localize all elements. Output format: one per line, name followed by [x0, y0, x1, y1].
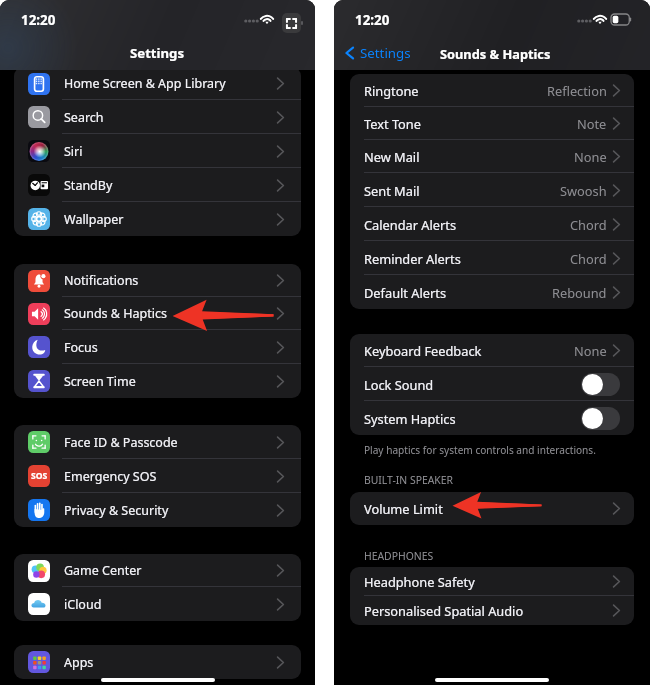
staticText: 12:20 [21, 11, 56, 29]
button[interactable]: System Haptics [350, 401, 634, 435]
button[interactable]: Headphone Safety [350, 567, 634, 596]
staticText: Sounds & Haptics [64, 305, 277, 322]
staticText: HEADPHONES [364, 549, 434, 563]
staticText: Sounds & Haptics [440, 45, 551, 62]
button[interactable]: Reminder Alerts [350, 241, 634, 275]
button[interactable]: New Mail [350, 140, 634, 173]
staticText: None [574, 148, 607, 165]
staticText: Reminder Alerts [364, 250, 570, 267]
staticText: None [574, 342, 607, 359]
staticText: Chord [570, 250, 607, 267]
staticText: Face ID & Passcode [64, 434, 277, 451]
button[interactable]: Search [14, 100, 301, 134]
button[interactable]: Siri [14, 134, 301, 168]
button[interactable]: Sent Mail [350, 173, 634, 207]
button[interactable]: StandBy [14, 168, 301, 202]
button[interactable]: Wallpaper [14, 202, 301, 236]
button[interactable]: Home Screen & App Library [14, 67, 301, 100]
staticText: Notifications [64, 272, 277, 289]
button[interactable]: Default Alerts [350, 275, 634, 309]
staticText: Screen Time [64, 373, 277, 390]
button[interactable]: Lock Sound [350, 367, 634, 401]
button[interactable]: Game Center [14, 554, 301, 587]
button[interactable]: Face ID & Passcode [14, 425, 301, 459]
button[interactable]: iCloud [14, 587, 301, 621]
staticText: Settings [130, 44, 185, 62]
staticText: Siri [64, 143, 277, 160]
staticText: Lock Sound [364, 376, 581, 393]
staticText: Personalised Spatial Audio [364, 602, 613, 619]
staticText: Focus [64, 339, 277, 356]
staticText: Note [577, 115, 607, 132]
staticText: Swoosh [560, 182, 607, 199]
staticText: StandBy [64, 177, 277, 194]
staticText: Rebound [552, 284, 607, 301]
staticText: Chord [570, 216, 607, 233]
staticText: Emergency SOS [64, 468, 277, 485]
staticText: Headphone Safety [364, 573, 613, 590]
staticText: SOS [31, 470, 48, 482]
staticText: Calendar Alerts [364, 216, 570, 233]
button[interactable]: Apps [14, 645, 301, 679]
staticText: Play haptics for system controls and int… [364, 443, 596, 457]
button[interactable]: Screen Time [14, 364, 301, 398]
button[interactable]: Privacy & Security [14, 493, 301, 527]
button[interactable]: Screen recording [282, 13, 301, 33]
staticText: Apps [64, 654, 277, 671]
staticText: iCloud [64, 596, 277, 613]
staticText: Wallpaper [64, 211, 277, 228]
button[interactable]: Text Tone [350, 107, 634, 140]
button[interactable]: Volume Limit [350, 492, 634, 525]
staticText: BUILT-IN SPEAKER [364, 473, 454, 487]
button[interactable]: Ringtone [350, 74, 634, 107]
button[interactable]: Personalised Spatial Audio [350, 596, 634, 625]
staticText: Settings [360, 44, 411, 62]
button[interactable]: Focus [14, 330, 301, 364]
button[interactable]: Sounds & Haptics [14, 297, 301, 330]
staticText: Text Tone [364, 115, 577, 132]
button[interactable]: SOS [14, 459, 301, 493]
staticText: Reflection [547, 82, 607, 99]
button[interactable]: Keyboard Feedback [350, 334, 634, 367]
button[interactable]: Notifications [14, 264, 301, 297]
staticText: Keyboard Feedback [364, 342, 574, 359]
staticText: Search [64, 109, 277, 126]
staticText: 12:20 [355, 11, 390, 29]
staticText: Sent Mail [364, 182, 560, 199]
staticText: System Haptics [364, 410, 581, 427]
staticText: New Mail [364, 148, 574, 165]
staticText: Ringtone [364, 82, 547, 99]
staticText: Home Screen & App Library [64, 75, 277, 92]
staticText: Privacy & Security [64, 502, 277, 519]
button[interactable]: Calendar Alerts [350, 207, 634, 241]
staticText: Volume Limit [364, 500, 613, 517]
button[interactable]: Settings [344, 44, 411, 62]
staticText: Game Center [64, 562, 277, 579]
staticText: Default Alerts [364, 284, 552, 301]
